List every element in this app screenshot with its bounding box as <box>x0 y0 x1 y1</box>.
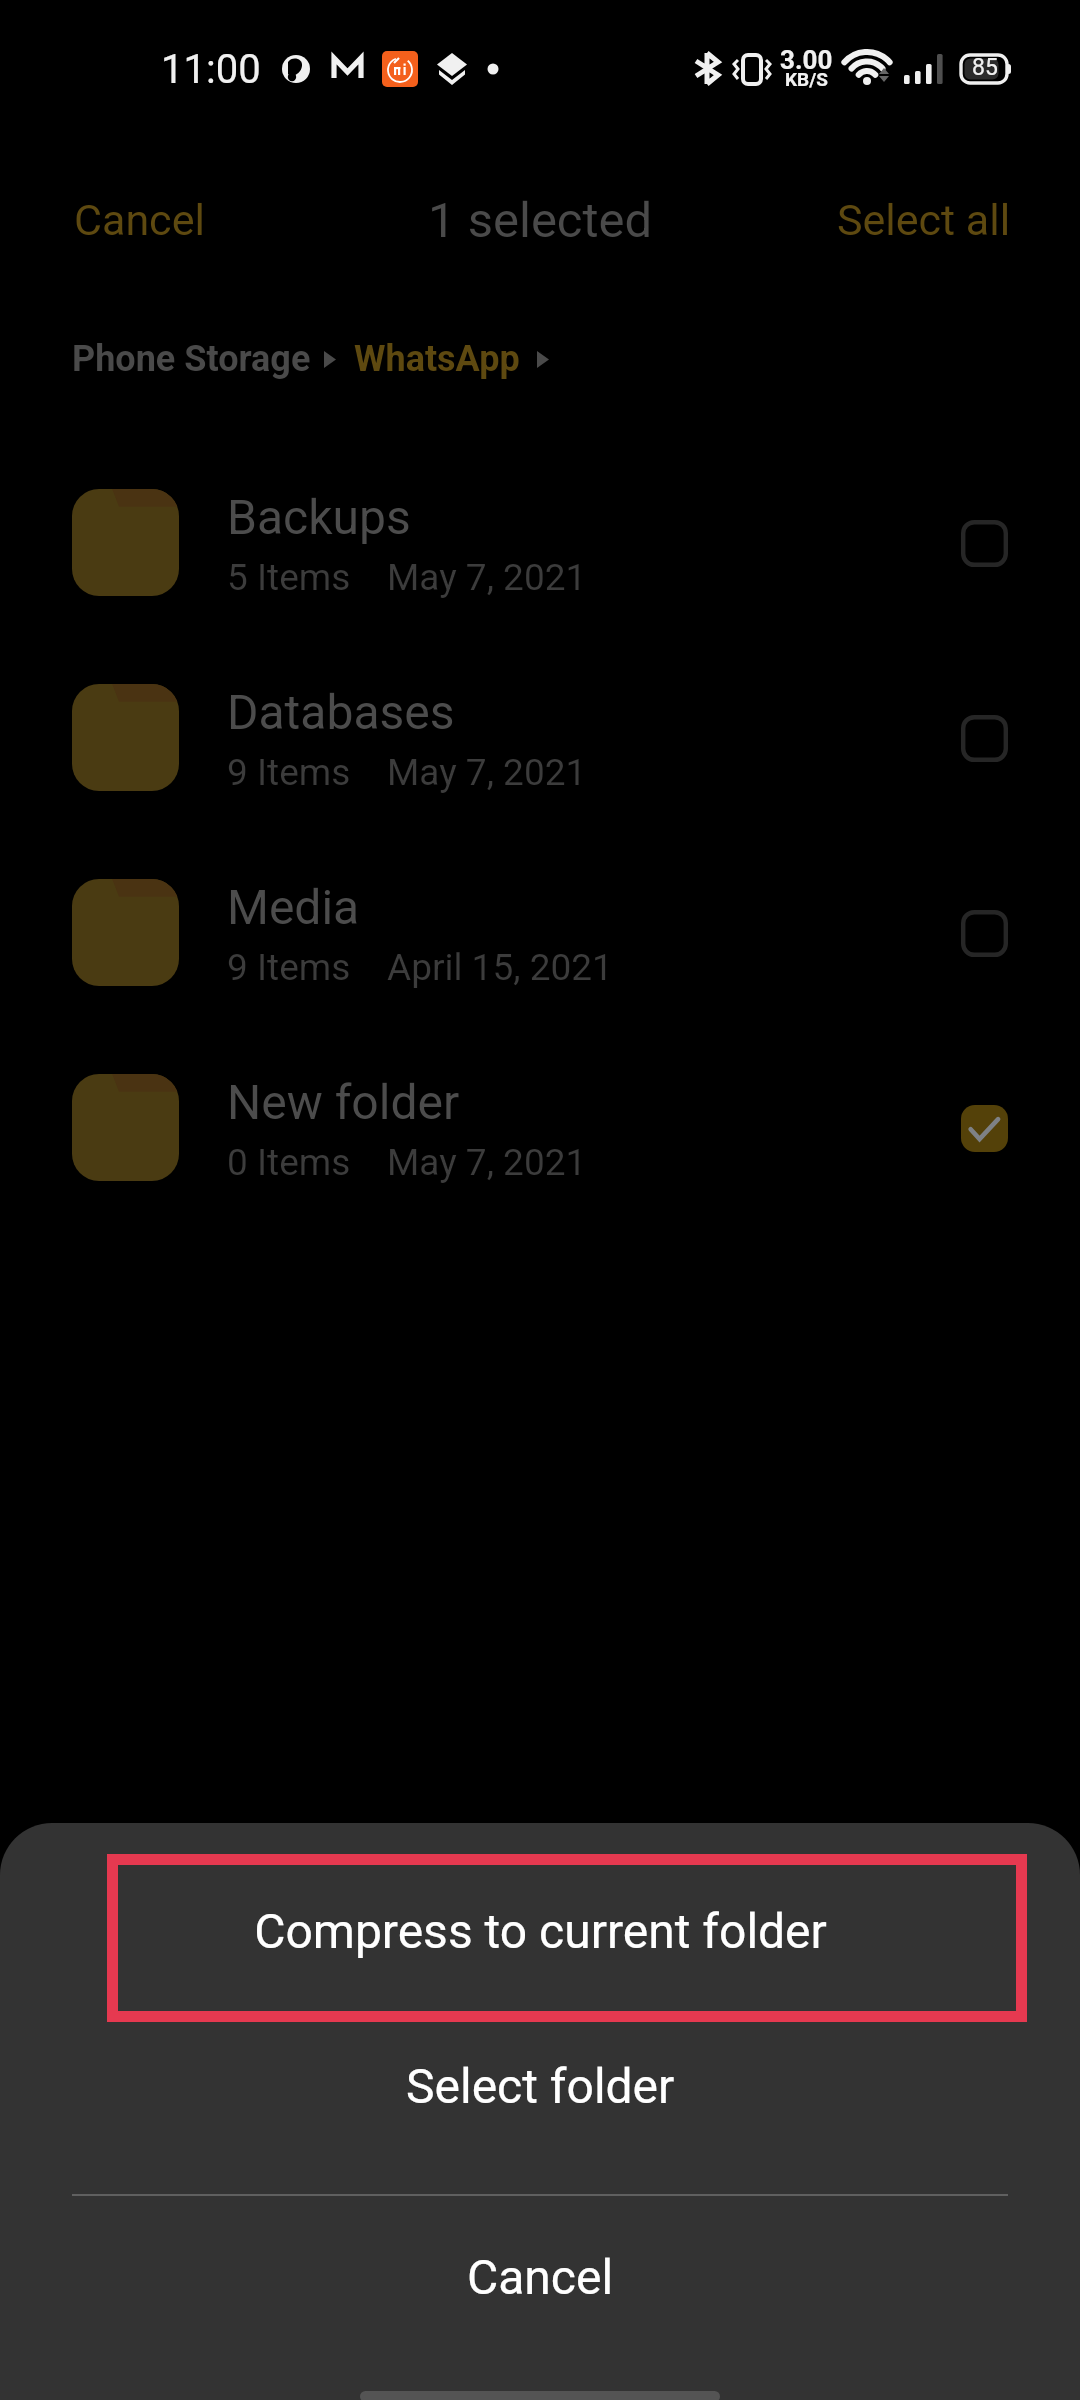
button[interactable]: WhatsApp <box>354 324 520 394</box>
staticText: Phone Storage <box>72 338 311 380</box>
button[interactable]: New folder <box>0 1030 1080 1225</box>
staticText: 11:00 <box>161 46 261 93</box>
button[interactable]: Select Databases <box>929 683 1039 793</box>
button[interactable]: Select Media <box>929 878 1039 988</box>
button[interactable]: Phone Storage <box>72 324 311 394</box>
button[interactable]: Media <box>0 835 1080 1030</box>
staticText: 3.00 <box>780 45 833 75</box>
staticText: Select all <box>837 195 1011 245</box>
staticText: 9 Items <box>227 946 351 989</box>
button[interactable]: Compress to current folder <box>0 1847 1080 2015</box>
button[interactable]: Databases <box>0 640 1080 835</box>
staticText: Cancel <box>74 195 205 245</box>
button[interactable]: Cancel <box>0 175 265 265</box>
staticText: April 15, 2021 <box>387 946 613 989</box>
staticText: May 7, 2021 <box>387 1141 587 1184</box>
button[interactable]: Backups <box>0 445 1080 640</box>
staticText: Media <box>227 879 360 935</box>
staticText: Backups <box>227 489 411 545</box>
staticText: 9 Items <box>227 751 351 794</box>
button[interactable]: Select all <box>777 175 1080 265</box>
staticText: May 7, 2021 <box>387 751 587 794</box>
staticText: Compress to current folder <box>254 1903 827 1959</box>
staticText: New folder <box>227 1074 460 1130</box>
staticText: 1 selected <box>428 192 653 249</box>
staticText: Select folder <box>406 2058 675 2114</box>
staticText: 85 <box>972 54 998 81</box>
staticText: 5 Items <box>227 556 351 599</box>
staticText: Databases <box>227 684 455 740</box>
staticText: May 7, 2021 <box>387 556 587 599</box>
button[interactable]: Selected <box>929 1073 1039 1183</box>
button[interactable]: Select Backups <box>929 488 1039 598</box>
button[interactable]: Cancel <box>0 2197 1080 2357</box>
staticText: KB/S <box>785 68 828 90</box>
staticText: Cancel <box>467 2249 614 2305</box>
staticText: WhatsApp <box>354 338 520 380</box>
staticText: 0 Items <box>227 1141 351 1184</box>
button[interactable]: Select folder <box>0 2013 1080 2159</box>
